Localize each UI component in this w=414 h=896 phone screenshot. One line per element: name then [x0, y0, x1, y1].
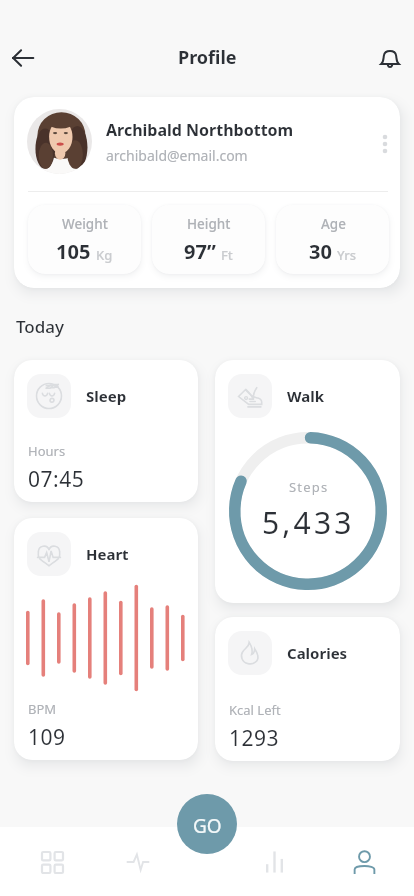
staticText: 5,433: [262, 502, 355, 543]
button[interactable]: More options: [370, 129, 400, 159]
button[interactable]: Sleep: [14, 360, 198, 502]
staticText: Kg: [96, 246, 113, 264]
staticText: 1293: [229, 724, 280, 753]
staticText: Steps: [289, 478, 329, 496]
staticText: 97”: [184, 238, 216, 265]
staticText: Kcal Left: [229, 701, 281, 719]
staticText: 105: [56, 238, 91, 265]
button[interactable]: Age: [276, 205, 389, 274]
button[interactable]: Profile: [336, 834, 392, 890]
button[interactable]: Statistics: [246, 834, 302, 890]
button[interactable]: Notifications: [368, 36, 412, 80]
button[interactable]: GO: [177, 794, 237, 854]
staticText: Walk: [287, 386, 324, 406]
button[interactable]: Dashboard: [24, 834, 80, 890]
staticText: archibald@email.com: [106, 146, 248, 165]
staticText: Weight: [62, 215, 108, 233]
button[interactable]: Calories: [215, 617, 400, 761]
button[interactable]: Activity: [110, 834, 166, 890]
staticText: Height: [187, 215, 231, 233]
staticText: Sleep: [86, 386, 127, 406]
staticText: Age: [321, 215, 346, 233]
button[interactable]: Heart: [14, 518, 198, 760]
button[interactable]: Weight: [28, 205, 141, 274]
button[interactable]: Archibald Northbottom: [14, 97, 400, 288]
staticText: 07:45: [28, 465, 85, 494]
button[interactable]: Height: [152, 205, 265, 274]
staticText: Yrs: [337, 246, 357, 264]
staticText: Profile: [178, 45, 237, 70]
staticText: Archibald Northbottom: [106, 119, 294, 141]
staticText: 30: [309, 238, 332, 265]
staticText: Calories: [287, 643, 348, 663]
staticText: 109: [28, 723, 66, 752]
staticText: Hours: [28, 442, 66, 460]
button[interactable]: Walk: [215, 360, 400, 603]
staticText: GO: [193, 813, 222, 839]
staticText: Heart: [86, 544, 129, 564]
staticText: BPM: [28, 700, 57, 718]
staticText: Today: [16, 315, 64, 338]
button[interactable]: Back: [0, 35, 46, 81]
staticText: Ft: [221, 246, 233, 264]
